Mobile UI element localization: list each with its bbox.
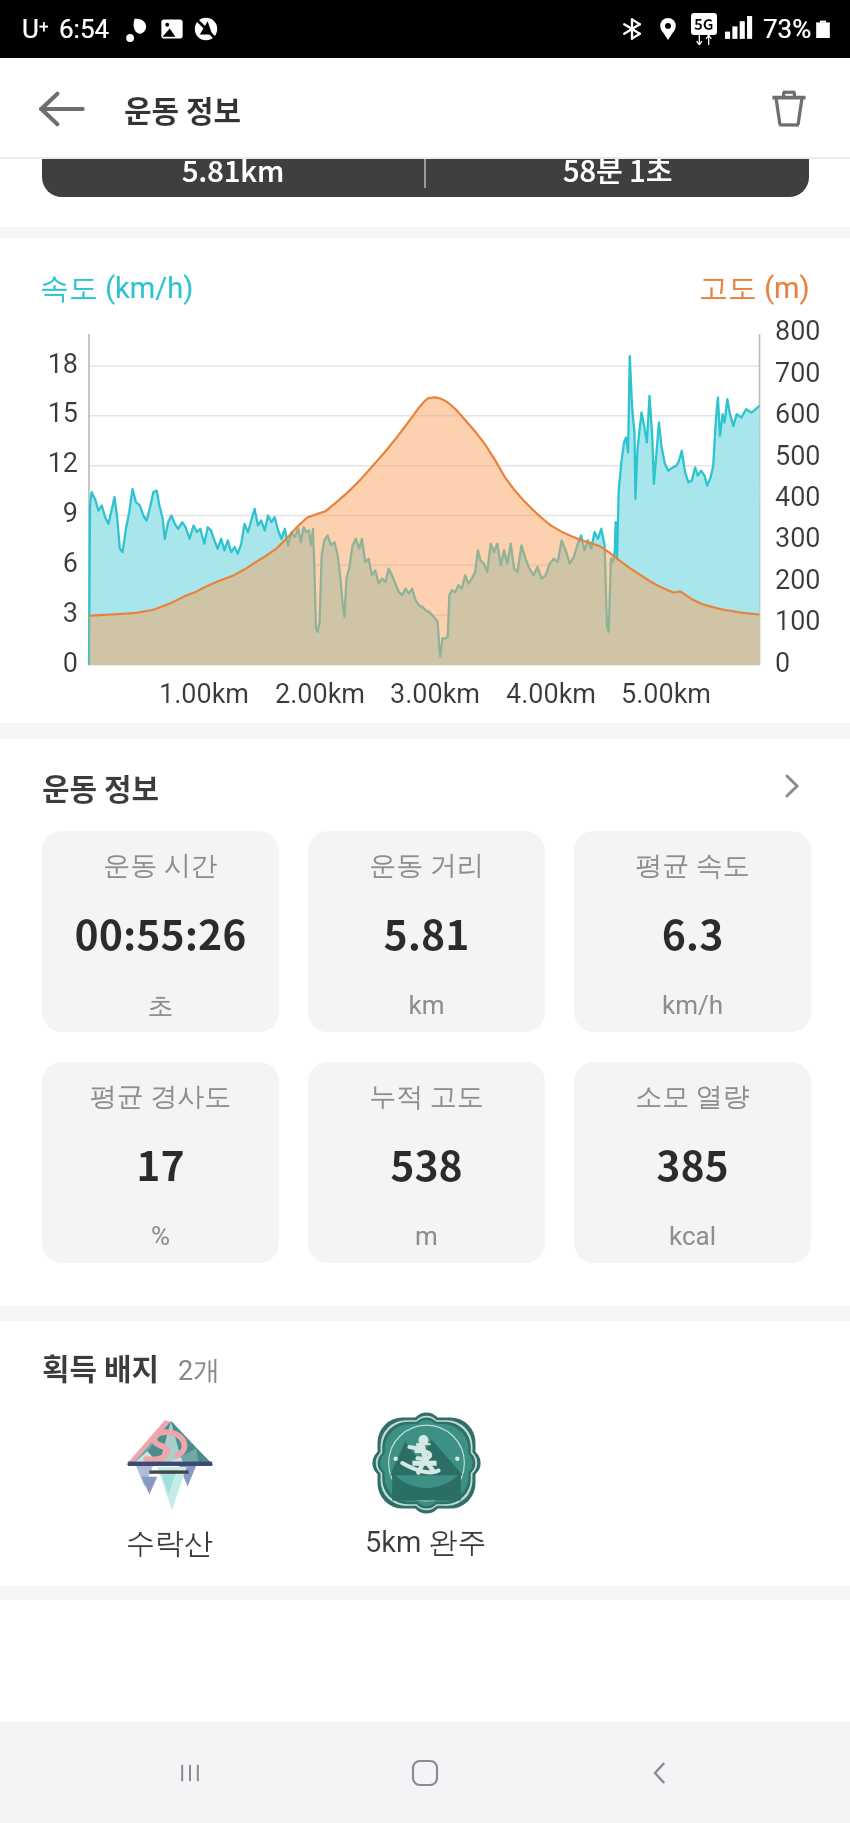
staticText: 5.00km <box>591 678 741 710</box>
staticText: 속도 (km/h) <box>40 270 194 307</box>
staticText: 1.00km <box>129 678 279 710</box>
staticText: kcal <box>574 1221 811 1251</box>
button[interactable]: 평균 속도 <box>574 831 811 1032</box>
staticText: 0 <box>775 647 850 679</box>
staticText: 9 <box>0 497 78 529</box>
staticText: 300 <box>775 522 850 554</box>
staticText: 700 <box>775 357 850 389</box>
staticText: 3 <box>0 597 78 629</box>
staticText: 5.81 <box>308 902 545 961</box>
staticText: 운동 정보 <box>124 87 242 130</box>
staticText: 500 <box>775 440 850 472</box>
staticText: 100 <box>775 605 850 637</box>
button[interactable]: 평균 경사도 <box>42 1062 279 1263</box>
staticText: 400 <box>775 481 850 513</box>
staticText: 5km 완주 <box>365 1524 487 1561</box>
staticText: 0 <box>0 647 78 679</box>
staticText: 2.00km <box>245 678 395 710</box>
staticText: 600 <box>775 398 850 430</box>
button[interactable]: Back <box>588 1722 732 1823</box>
staticText: km/h <box>574 990 811 1020</box>
button[interactable]: 운동 시간 <box>42 831 279 1032</box>
staticText: + <box>39 16 49 36</box>
staticText: 3.00km <box>360 678 510 710</box>
staticText: 17 <box>42 1133 279 1192</box>
staticText: 18 <box>0 348 78 380</box>
staticText: 15 <box>0 397 78 429</box>
button[interactable]: 소모 열량 <box>574 1062 811 1263</box>
staticText: 초 <box>42 990 279 1023</box>
staticText: 200 <box>775 564 850 596</box>
staticText: 12 <box>0 447 78 479</box>
staticText: 소모 열량 <box>574 1080 811 1114</box>
staticText: 538 <box>308 1133 545 1192</box>
button[interactable]: 운동 거리 <box>308 831 545 1032</box>
staticText: 73% <box>763 14 812 44</box>
staticText: 800 <box>775 315 850 347</box>
staticText: 운동 거리 <box>308 849 545 883</box>
staticText: 고도 (m) <box>699 270 810 307</box>
button[interactable]: Delete <box>728 58 850 159</box>
button[interactable]: 운동 정보 <box>0 752 850 820</box>
button[interactable]: Home <box>353 1722 497 1823</box>
button[interactable]: Recents <box>118 1722 262 1823</box>
staticText: 4.00km <box>476 678 626 710</box>
staticText: 수락산 <box>126 1525 213 1562</box>
button[interactable]: 5.81km <box>42 107 809 197</box>
staticText: 획득 배지 <box>42 1345 160 1388</box>
staticText: 5.81km <box>182 148 285 190</box>
staticText: % <box>42 1221 279 1251</box>
button[interactable]: 수락산 <box>71 1416 267 1562</box>
staticText: 6:54 <box>59 14 110 44</box>
staticText: 5G <box>694 13 714 35</box>
button[interactable]: Back <box>0 58 124 159</box>
staticText: 6 <box>0 547 78 579</box>
staticText: 누적 고도 <box>308 1080 545 1114</box>
staticText: 평균 경사도 <box>42 1080 279 1114</box>
staticText: m <box>308 1221 545 1251</box>
staticText: 00:55:26 <box>42 902 279 961</box>
button[interactable]: 누적 고도 <box>308 1062 545 1263</box>
staticText: km <box>308 990 545 1020</box>
staticText: 58분 1초 <box>563 148 673 190</box>
staticText: 6.3 <box>574 902 811 961</box>
button[interactable]: 5km 완주 <box>328 1416 524 1561</box>
staticText: 운동 정보 <box>42 765 160 808</box>
staticText: U <box>22 14 39 44</box>
staticText: 385 <box>574 1133 811 1192</box>
staticText: 운동 시간 <box>42 849 279 883</box>
staticText: 평균 속도 <box>574 849 811 883</box>
staticText: 2개 <box>178 1354 221 1388</box>
